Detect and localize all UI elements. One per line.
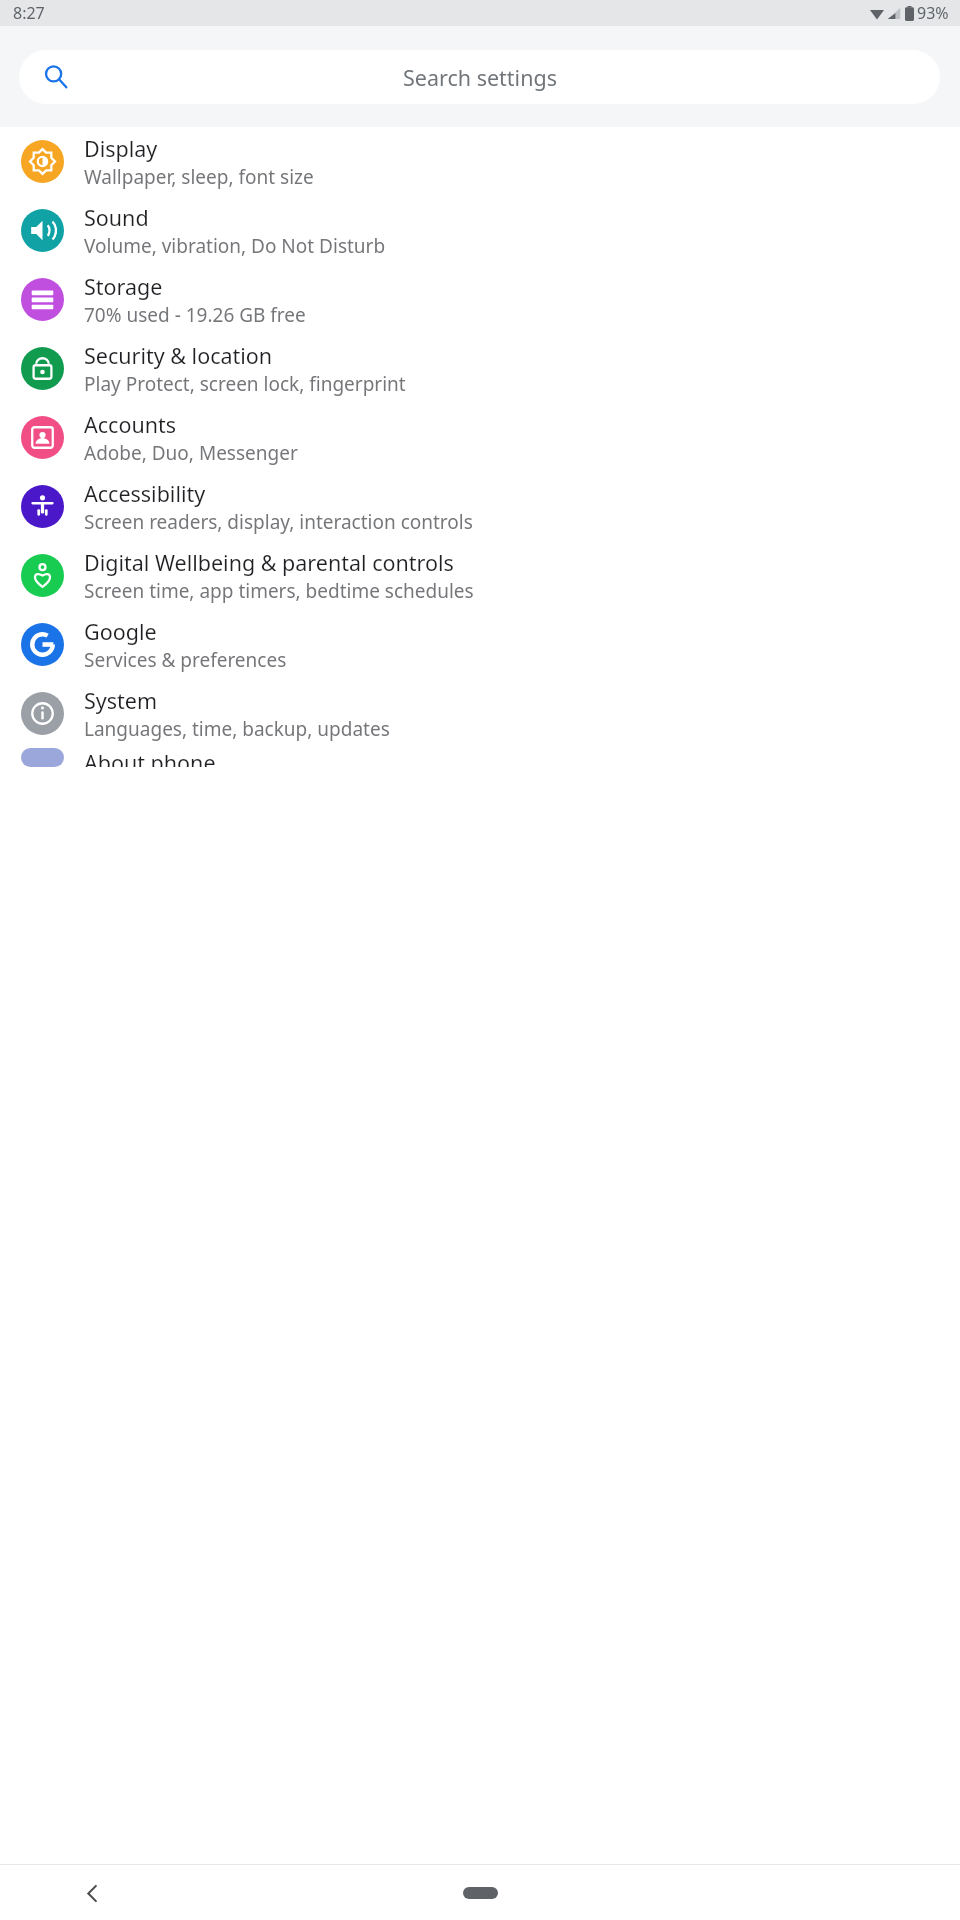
button[interactable]: Sound	[0, 196, 960, 265]
staticText: Adobe, Duo, Messenger	[84, 440, 298, 466]
staticText: Accessibility	[84, 479, 206, 508]
button[interactable]: Security & location	[0, 334, 960, 403]
button[interactable]: Search settings	[19, 50, 940, 104]
button[interactable]: About phone	[0, 748, 960, 767]
staticText: Play Protect, screen lock, fingerprint	[84, 371, 406, 397]
button[interactable]: Accounts	[0, 403, 960, 472]
button[interactable]: Accessibility	[0, 472, 960, 541]
button[interactable]: Back	[70, 1871, 114, 1915]
button[interactable]: Google	[0, 610, 960, 679]
button[interactable]: Digital Wellbeing & parental controls	[0, 541, 960, 610]
staticText: Storage	[84, 272, 163, 301]
staticText: Search settings	[403, 63, 557, 92]
staticText: Wallpaper, sleep, font size	[84, 164, 314, 190]
staticText: System	[84, 686, 158, 715]
button[interactable]: Storage	[0, 265, 960, 334]
staticText: Digital Wellbeing & parental controls	[84, 548, 454, 577]
staticText: 93%	[917, 2, 949, 24]
staticText: Screen time, app timers, bedtime schedul…	[84, 578, 474, 604]
staticText: 70% used - 19.26 GB free	[84, 302, 306, 328]
staticText: Volume, vibration, Do Not Disturb	[84, 233, 386, 259]
staticText: Security & location	[84, 341, 273, 370]
staticText: About phone	[84, 748, 216, 767]
staticText: Display	[84, 134, 158, 163]
staticText: 8:27	[13, 2, 45, 24]
button[interactable]: Display	[0, 127, 960, 196]
staticText: Sound	[84, 203, 149, 232]
button[interactable]: Home	[445, 1876, 515, 1910]
staticText: Services & preferences	[84, 647, 287, 673]
staticText: Screen readers, display, interaction con…	[84, 509, 473, 535]
staticText: Languages, time, backup, updates	[84, 716, 390, 742]
staticText: Accounts	[84, 410, 177, 439]
button[interactable]: System	[0, 679, 960, 748]
staticText: Google	[84, 617, 157, 646]
